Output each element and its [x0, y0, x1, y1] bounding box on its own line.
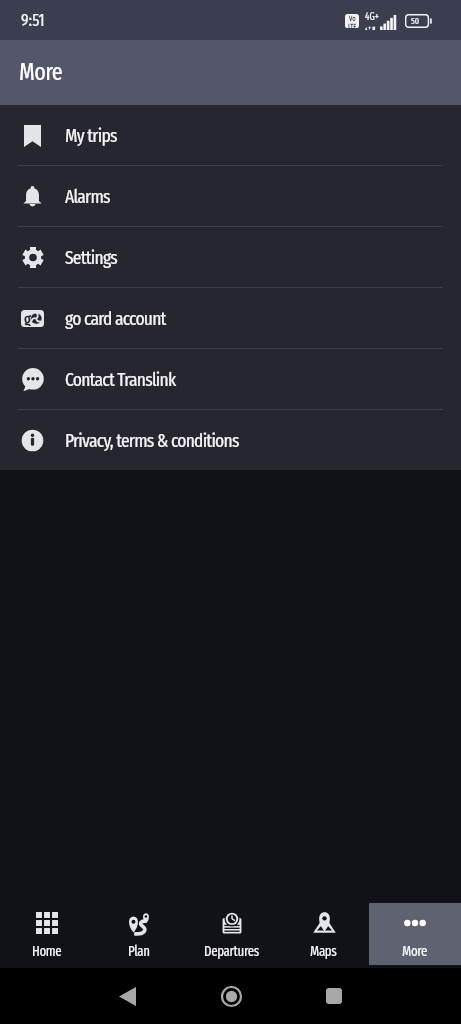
button[interactable]: Settings — [0, 227, 461, 287]
staticText: go card account — [65, 307, 166, 330]
staticText: Departures — [204, 943, 259, 960]
staticText: g — [24, 310, 31, 326]
staticText: Contact Translink — [65, 368, 176, 391]
button[interactable]: g — [0, 288, 461, 348]
staticText: 4G+ — [365, 11, 379, 23]
staticText: Vo — [349, 14, 356, 22]
staticText: My trips — [65, 124, 117, 147]
staticText: Home — [32, 943, 62, 960]
button[interactable]: Recent apps — [313, 975, 355, 1017]
staticText: Plan — [128, 943, 150, 960]
button[interactable]: Contact Translink — [0, 349, 461, 409]
staticText: More — [19, 58, 63, 87]
button[interactable]: Alarms — [0, 166, 461, 226]
button[interactable]: My trips — [0, 105, 461, 165]
staticText: More — [402, 943, 428, 960]
button[interactable]: Home — [0, 903, 93, 965]
staticText: LTE — [348, 22, 357, 28]
button[interactable]: Back — [106, 975, 148, 1017]
button[interactable]: More — [369, 903, 461, 965]
staticText: Privacy, terms & conditions — [65, 429, 239, 452]
staticText: Alarms — [65, 185, 110, 208]
staticText: 9:51 — [21, 10, 45, 30]
button[interactable]: Plan — [93, 903, 185, 965]
staticText: Settings — [65, 246, 117, 269]
staticText: Maps — [310, 943, 337, 960]
staticText: 50 — [411, 16, 420, 27]
button[interactable]: Home — [210, 975, 252, 1017]
button[interactable]: Privacy, terms & conditions — [0, 410, 461, 470]
button[interactable]: Departures — [185, 903, 277, 965]
button[interactable]: Maps — [277, 903, 369, 965]
